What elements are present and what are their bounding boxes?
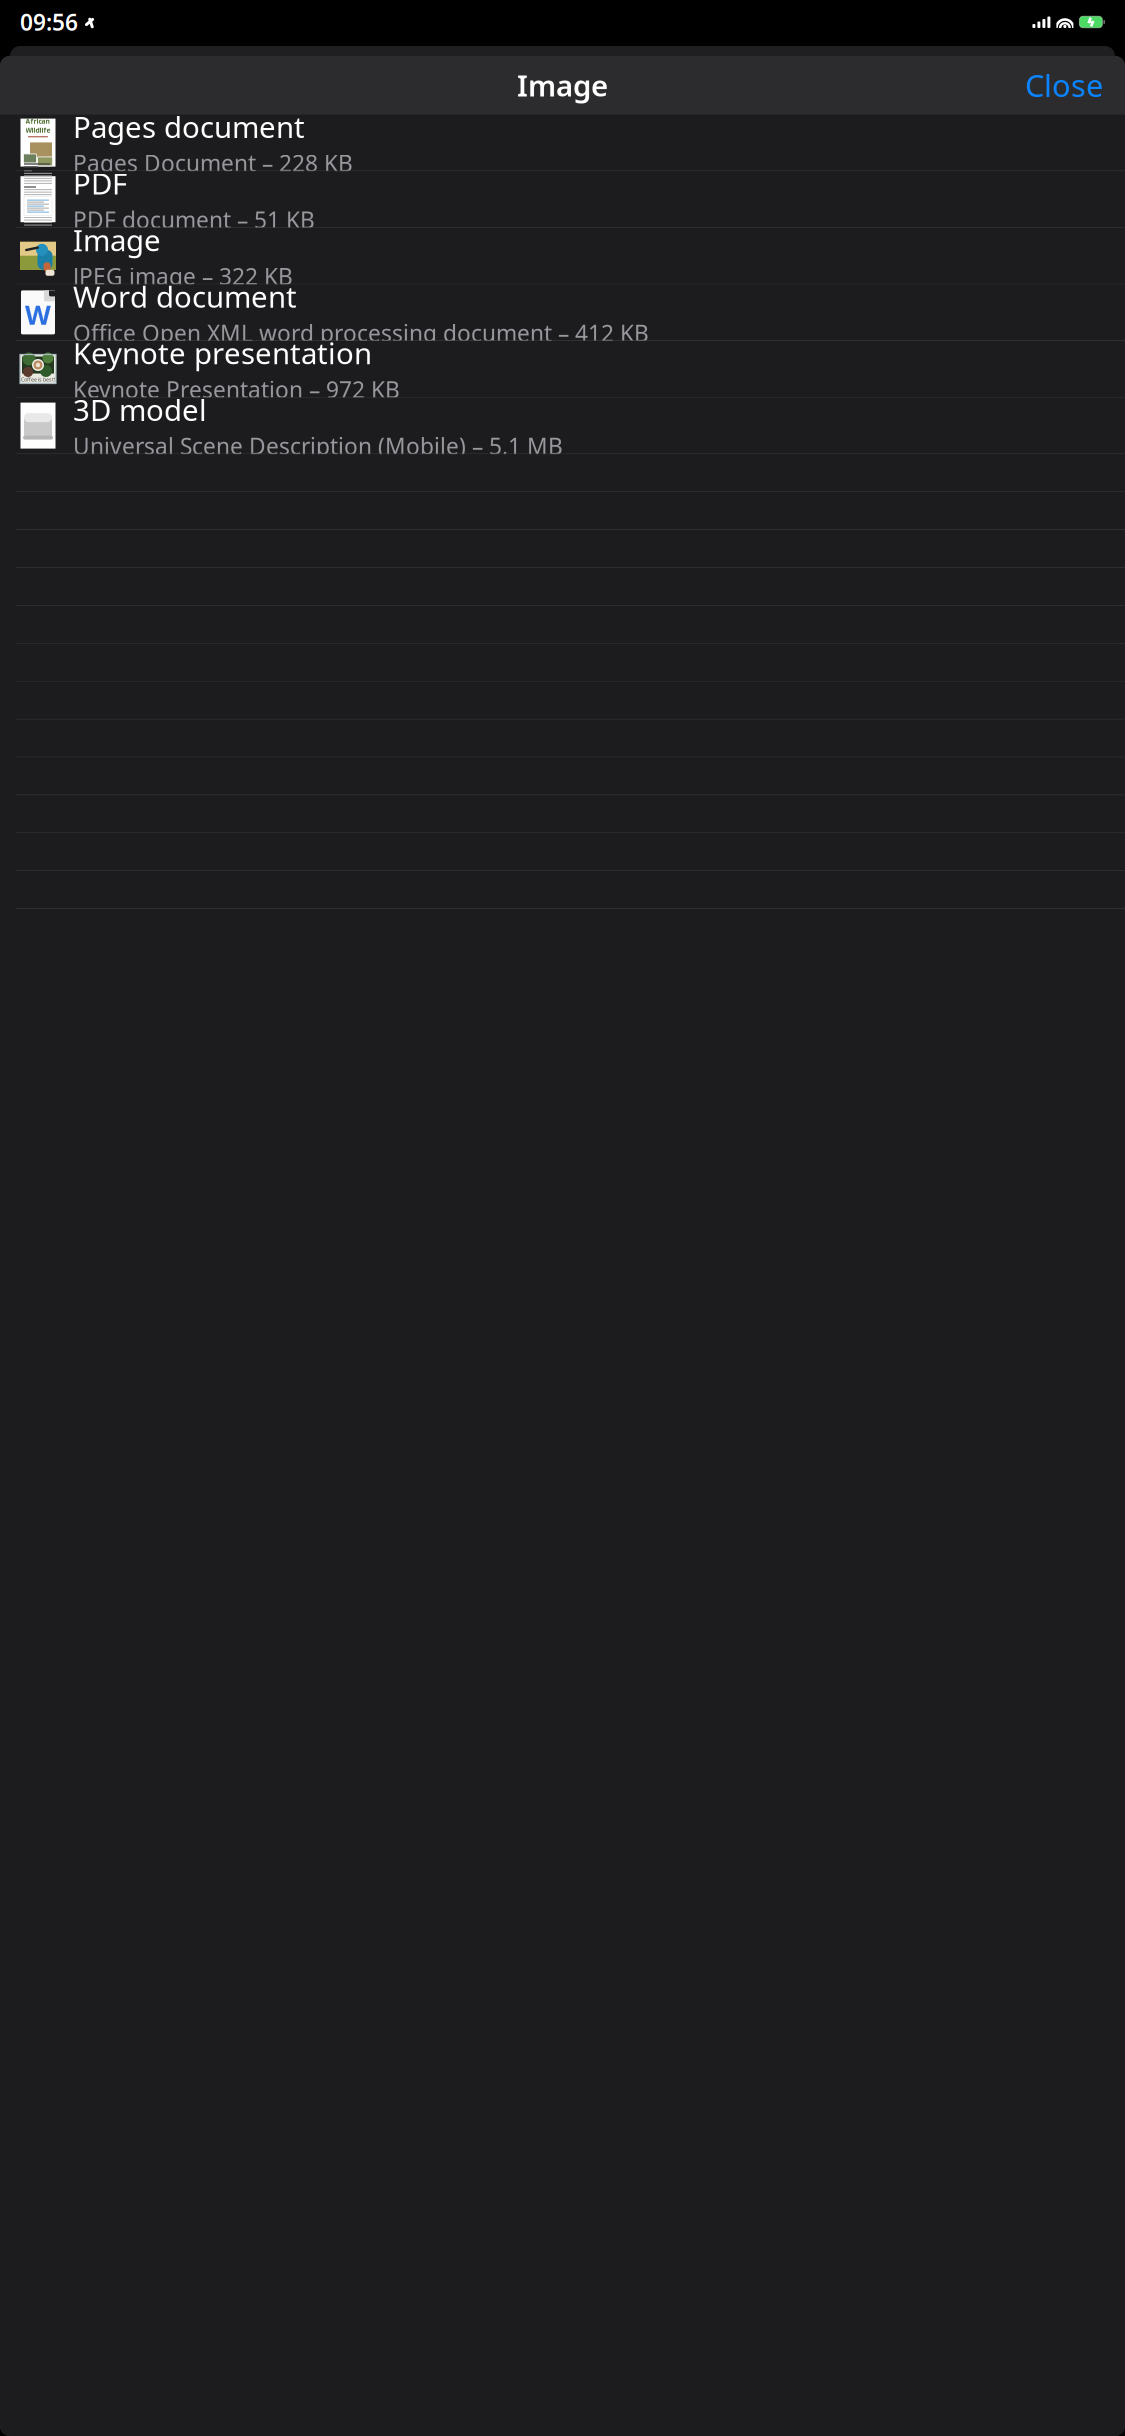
staticText: Keynote Presentation – 972 KB [73, 374, 400, 404]
staticText: 3D model [73, 390, 207, 429]
staticText: PDF document – 51 KB [73, 205, 315, 235]
button[interactable]: 3D model [0, 398, 1125, 454]
staticText: Image [73, 220, 161, 259]
button[interactable]: W [0, 284, 1125, 341]
staticText: Close [1025, 65, 1103, 105]
staticText: PDF [73, 164, 127, 203]
staticText: Image [517, 65, 608, 104]
button[interactable]: Coffee is best! [0, 341, 1125, 398]
staticText: JPEG image – 322 KB [73, 261, 293, 291]
staticText: Pages document [73, 107, 305, 146]
button[interactable]: Close [1019, 59, 1109, 111]
staticText: W [25, 297, 51, 332]
staticText: Universal Scene Description (Mobile) – 5… [73, 431, 563, 461]
staticText: Office Open XML word processing document… [73, 318, 649, 348]
staticText: Keynote presentation [73, 333, 372, 372]
staticText: Pages Document – 228 KB [73, 148, 353, 178]
staticText: Coffee is best! [21, 376, 55, 383]
button[interactable]: Image [0, 228, 1125, 284]
staticText: Word document [73, 277, 297, 316]
button[interactable]: African Wildlife [0, 115, 1125, 171]
staticText: African Wildlife [25, 117, 50, 134]
staticText: 09:56 [20, 7, 78, 37]
button[interactable]: PDF [0, 171, 1125, 228]
